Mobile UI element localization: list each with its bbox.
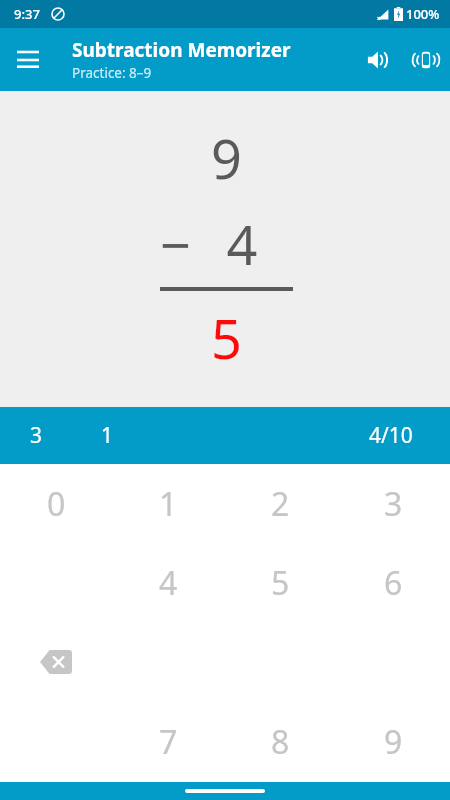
staticText: 100%: [406, 5, 440, 23]
staticText: Practice: 8–9: [72, 64, 152, 82]
button[interactable]: Open navigation menu: [0, 32, 56, 88]
staticText: 5: [160, 301, 293, 375]
button[interactable]: Toggle sound: [354, 36, 402, 84]
staticText: 3: [30, 421, 43, 450]
button[interactable]: 3: [337, 464, 450, 543]
staticText: 5: [271, 561, 290, 605]
staticText: 1: [101, 421, 114, 450]
staticText: 1: [159, 482, 178, 526]
button[interactable]: 4: [112, 543, 224, 622]
staticText: 9:37: [14, 5, 40, 23]
button[interactable]: 0: [0, 464, 112, 543]
staticText: 2: [271, 482, 290, 526]
staticText: 9: [384, 720, 403, 764]
staticText: 4: [159, 561, 178, 605]
button[interactable]: Backspace: [0, 622, 112, 702]
button[interactable]: 8: [224, 702, 337, 782]
button[interactable]: Toggle vibration: [402, 36, 450, 84]
staticText: −: [160, 207, 191, 281]
staticText: 6: [384, 561, 403, 605]
staticText: Subtraction Memorizer: [72, 37, 291, 63]
button[interactable]: 7: [112, 702, 224, 782]
button[interactable]: 5: [224, 543, 337, 622]
staticText: 4: [191, 207, 293, 281]
staticText: 8: [271, 720, 290, 764]
staticText: 4/10: [369, 421, 413, 450]
staticText: 9: [160, 121, 293, 195]
staticText: 0: [47, 482, 66, 526]
button[interactable]: 9: [337, 702, 450, 782]
staticText: 3: [384, 482, 403, 526]
button[interactable]: 2: [224, 464, 337, 543]
staticText: 7: [159, 720, 178, 764]
button[interactable]: 1: [112, 464, 224, 543]
button[interactable]: 6: [337, 543, 450, 622]
